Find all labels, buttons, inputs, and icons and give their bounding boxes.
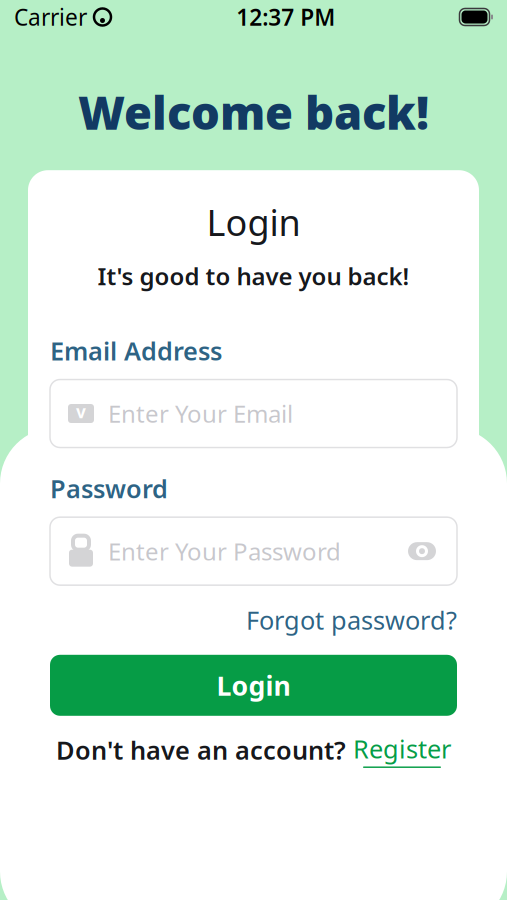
staticText: Carrier — [14, 2, 87, 32]
staticText: Enter Your Email — [108, 398, 293, 429]
staticText: 12:37 PM — [236, 2, 335, 32]
button[interactable]: Login — [50, 655, 457, 716]
staticText: Email Address — [50, 334, 222, 367]
staticText: Login — [206, 198, 300, 246]
staticText: Login — [216, 668, 290, 703]
button[interactable]: Show password — [405, 534, 439, 568]
staticText: Register — [353, 732, 451, 765]
staticText: It's good to have you back! — [97, 260, 409, 292]
staticText: Forgot password? — [246, 603, 457, 637]
staticText: Password — [50, 471, 168, 505]
button[interactable]: Don't have an account? — [56, 732, 451, 768]
staticText: Enter Your Password — [108, 535, 341, 567]
button[interactable]: Forgot password? — [246, 603, 457, 637]
staticText: v — [76, 400, 86, 423]
staticText: Don't have an account? — [56, 733, 346, 767]
staticText: Welcome back! — [78, 82, 429, 142]
